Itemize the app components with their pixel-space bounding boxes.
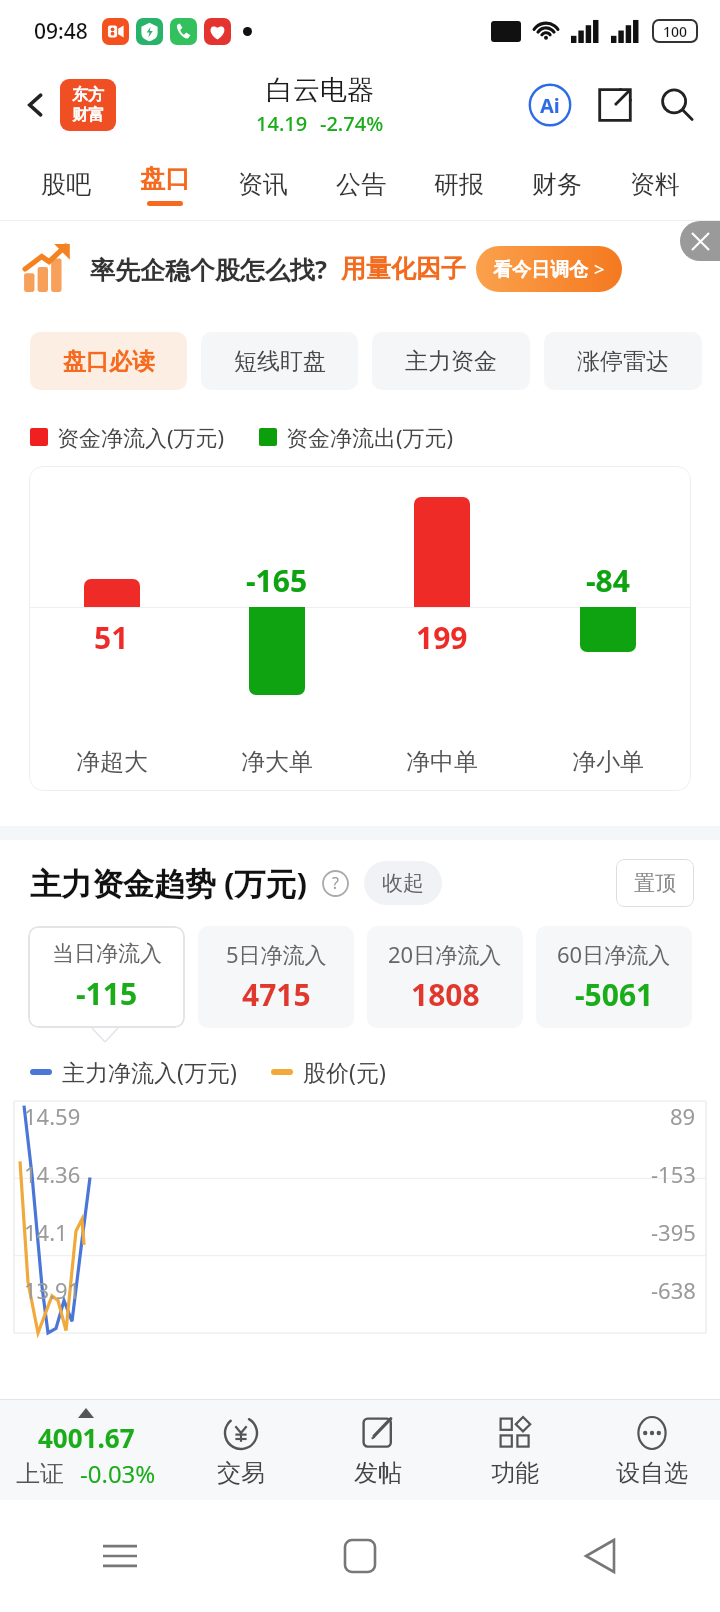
button[interactable]: 盘口必读 [30,332,187,390]
button[interactable]: 看今日调仓 [476,246,622,292]
button[interactable]: 短线盯盘 [201,332,358,390]
staticText: 1808 [411,974,480,1015]
staticText: 发帖 [354,1458,402,1488]
staticText: 财务 [532,169,582,200]
staticText: 净大单 [241,747,313,777]
button[interactable]: 功能 [446,1400,583,1500]
staticText: 14.59 [24,1101,81,1131]
button[interactable]: 股吧 [16,148,115,220]
button[interactable]: 主力资金 [372,332,530,390]
staticText: 东方 [72,85,104,105]
staticText: 设自选 [616,1458,688,1488]
button[interactable]: AI assistant [524,79,576,131]
button[interactable]: Help [320,868,350,898]
button[interactable]: 设自选 [583,1400,720,1500]
button[interactable]: 收起 [364,861,442,905]
staticText: 资金净流出(万元) [286,422,454,452]
staticText: -153 [651,1159,696,1189]
button[interactable]: 涨停雷达 [544,332,702,390]
button[interactable]: 发帖 [309,1400,446,1500]
staticText: 资金净流入(万元) [57,422,225,452]
staticText: -2.74% [320,110,384,137]
button[interactable]: 60日净流入 [536,926,692,1028]
staticText: 净小单 [572,747,644,777]
staticText: ? [332,872,339,894]
button[interactable]: Close ad [680,221,720,261]
staticText: 51 [94,617,129,658]
staticText: 用量化因子 [341,253,466,284]
staticText: 净中单 [406,747,478,777]
staticText: 5日净流入 [226,939,327,969]
staticText: 4001.67 [38,1420,135,1455]
button[interactable]: Search [652,80,702,130]
staticText: 资讯 [238,169,288,200]
staticText: -84 [586,560,630,601]
staticText: 白云电器 [266,73,374,107]
staticText: 100 [663,22,688,41]
staticText: 14.36 [24,1159,81,1189]
staticText: 交易 [217,1458,265,1488]
staticText: 净超大 [76,747,148,777]
button[interactable]: 当日净流入 [28,926,185,1028]
button[interactable]: 资讯 [214,148,312,220]
button[interactable]: Back [12,81,60,129]
staticText: -638 [651,1275,696,1305]
button[interactable]: 4001.67 [0,1400,172,1500]
staticText: 60日净流入 [557,939,671,969]
staticText: 涨停雷达 [577,347,669,376]
staticText: 09:48 [34,17,88,46]
button[interactable]: 财务 [508,148,606,220]
staticText: 13.91 [24,1275,81,1305]
staticText: 功能 [491,1458,539,1488]
staticText: 看今日调仓 [493,258,588,282]
staticText: 股价(元) [303,1056,386,1087]
staticText: 率先企稳个股怎么找? [90,252,327,286]
button[interactable]: 交易 [172,1400,309,1500]
button[interactable]: 置顶 [616,859,694,907]
staticText: 主力净流入(万元) [62,1056,237,1087]
staticText: 收起 [382,870,424,896]
staticText: 研报 [434,169,484,200]
button[interactable]: 资料 [606,148,704,220]
staticText: 4715 [242,974,311,1015]
staticText: 股吧 [41,169,91,200]
staticText: -0.03% [80,1457,156,1490]
staticText: -115 [76,973,138,1014]
staticText: 财富 [72,105,104,125]
button[interactable]: 率先企稳个股怎么找? [0,221,720,316]
staticText: 199 [416,617,468,658]
button[interactable]: 盘口 [115,148,214,220]
button[interactable]: Share [590,80,640,130]
staticText: 20日净流入 [388,939,502,969]
staticText: 公告 [336,169,386,200]
staticText: 14.19 [256,110,308,137]
button[interactable]: 20日净流入 [367,926,523,1028]
staticText: > [594,257,605,282]
staticText: -5061 [575,974,654,1015]
button[interactable]: East Money [60,79,116,131]
staticText: 当日净流入 [52,940,162,968]
staticText: 置顶 [634,870,676,896]
staticText: 资料 [630,169,680,200]
button[interactable]: 5日净流入 [198,926,354,1028]
staticText: 盘口必读 [63,347,155,376]
button[interactable]: 公告 [312,148,410,220]
staticText: 主力资金趋势 (万元) [30,862,308,904]
staticText: 短线盯盘 [234,347,326,376]
staticText: 14.1 [24,1217,68,1247]
button[interactable]: 研报 [410,148,508,220]
staticText: -395 [651,1217,696,1247]
staticText: 上证 [16,1459,64,1489]
staticText: 盘口 [140,163,190,194]
staticText: 89 [670,1101,696,1131]
staticText: Ai [540,92,560,119]
staticText: 主力资金 [405,347,497,376]
staticText: -165 [246,560,308,601]
